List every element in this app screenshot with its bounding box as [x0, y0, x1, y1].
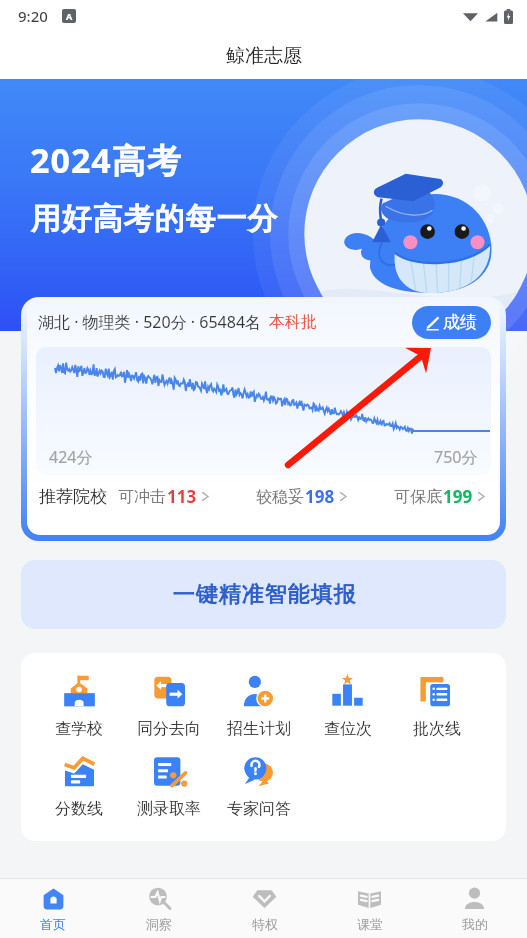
- staticText: 洞察: [146, 916, 172, 932]
- staticText: 同分去向: [137, 719, 201, 739]
- staticText: 一键精准智能填报: [172, 581, 356, 609]
- staticText: 113: [167, 485, 197, 508]
- button[interactable]: 同分去向: [124, 675, 214, 739]
- staticText: 本科批: [269, 312, 317, 332]
- staticText: 推荐院校: [39, 486, 107, 507]
- button[interactable]: 洞察: [106, 879, 212, 938]
- staticText: 批次线: [413, 719, 461, 739]
- button[interactable]: 招生计划: [214, 675, 303, 739]
- staticText: 测录取率: [137, 799, 201, 819]
- staticText: 鲸准志愿: [226, 44, 302, 68]
- staticText: 199: [443, 485, 473, 508]
- staticText: 9:20: [18, 6, 48, 26]
- staticText: 首页: [40, 916, 66, 932]
- staticText: 查学校: [55, 719, 103, 739]
- button[interactable]: 一键精准智能填报: [21, 560, 506, 629]
- staticText: 特权: [252, 916, 278, 932]
- staticText: 198: [305, 485, 335, 508]
- button[interactable]: 特权: [212, 879, 317, 938]
- button[interactable]: 湖北 · 物理类 · 520分 · 65484名: [27, 297, 500, 535]
- button[interactable]: 可保底: [394, 485, 487, 508]
- staticText: 专家问答: [227, 799, 291, 819]
- staticText: 可保底: [394, 487, 442, 507]
- button[interactable]: 批次线: [392, 675, 481, 739]
- staticText: 2024高考: [30, 137, 182, 183]
- staticText: 我的: [462, 916, 488, 932]
- staticText: 招生计划: [227, 719, 291, 739]
- staticText: 成绩: [443, 312, 477, 333]
- button[interactable]: 较稳妥: [256, 485, 349, 508]
- staticText: 湖北 · 物理类 · 520分 · 65484名: [38, 311, 262, 333]
- staticText: 750分: [434, 446, 478, 468]
- button[interactable]: 测录取率: [124, 755, 214, 819]
- staticText: 分数线: [55, 799, 103, 819]
- staticText: 课堂: [357, 916, 383, 932]
- button[interactable]: 可冲击: [118, 485, 211, 508]
- button[interactable]: 我的: [422, 879, 527, 938]
- button[interactable]: 查学校: [34, 675, 124, 739]
- button[interactable]: 课堂: [317, 879, 422, 938]
- staticText: 可冲击: [118, 487, 166, 507]
- staticText: 较稳妥: [256, 487, 304, 507]
- button[interactable]: 成绩: [412, 306, 491, 339]
- button[interactable]: 专家问答: [214, 755, 303, 819]
- button[interactable]: 分数线: [34, 755, 124, 819]
- staticText: A: [66, 10, 73, 22]
- staticText: 查位次: [324, 719, 372, 739]
- staticText: 用好高考的每一分: [30, 200, 278, 238]
- staticText: 424分: [49, 446, 93, 468]
- button[interactable]: 查位次: [303, 675, 392, 739]
- button[interactable]: 首页: [0, 879, 106, 938]
